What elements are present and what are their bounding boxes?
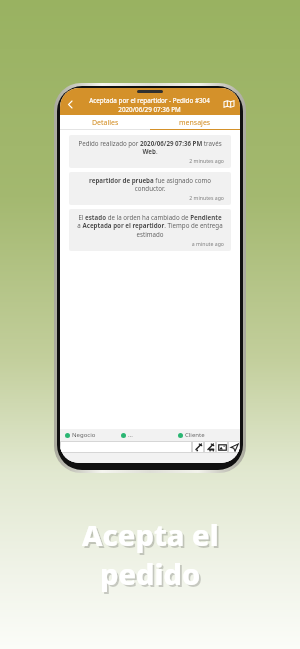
- staticText: Detalles: [92, 118, 119, 128]
- staticText: Acepta el: [82, 515, 219, 554]
- button[interactable]: Driver signature: [204, 441, 216, 453]
- staticText: Cliente: [185, 431, 205, 439]
- button[interactable]: repartidor de prueba fue asignado como c…: [69, 172, 231, 205]
- button[interactable]: Pedido realizado por 2020/06/29 07:36 PM…: [69, 135, 231, 168]
- staticText: Aceptada por el repartidor - Pedido #304: [89, 96, 210, 105]
- button[interactable]: Send: [228, 441, 240, 453]
- button[interactable]: El estado de la orden ha cambiado de Pen…: [69, 209, 231, 251]
- staticText: Pedido realizado por 2020/06/29 07:36 PM…: [76, 139, 224, 155]
- button[interactable]: mensajes: [150, 115, 240, 130]
- button[interactable]: Detalles: [60, 115, 150, 130]
- button[interactable]: ...: [121, 431, 178, 439]
- staticText: 2 minutes ago: [76, 194, 224, 201]
- button[interactable]: Attach image: [216, 441, 228, 453]
- staticText: mensajes: [179, 118, 211, 128]
- staticText: pedido: [102, 556, 203, 595]
- button[interactable]: Message input: [60, 441, 192, 453]
- button[interactable]: Cliente: [178, 431, 235, 439]
- staticText: ...: [128, 431, 133, 439]
- button[interactable]: Sign: [192, 441, 204, 453]
- staticText: repartidor de prueba fue asignado como c…: [76, 176, 224, 192]
- staticText: 2 minutes ago: [76, 157, 224, 164]
- staticText: El estado de la orden ha cambiado de Pen…: [76, 213, 224, 238]
- staticText: Acepta el: [84, 517, 221, 556]
- staticText: Negocio: [72, 431, 96, 439]
- button[interactable]: Back: [62, 96, 78, 112]
- button[interactable]: Map: [221, 96, 237, 112]
- staticText: pedido: [100, 554, 201, 593]
- staticText: a minute ago: [76, 240, 224, 247]
- button[interactable]: Negocio: [65, 431, 121, 439]
- staticText: 2020/06/29 07:36 PM: [118, 105, 181, 114]
